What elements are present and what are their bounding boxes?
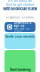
button[interactable]: Download & sign up — [4, 22, 35, 32]
staticText: Takes under two minutes — [13, 28, 29, 33]
staticText: Start banking — [9, 67, 30, 71]
staticText: that to get started — [6, 3, 34, 6]
staticText: with Molecule Bank — [3, 6, 37, 11]
staticText: Download & sign up — [13, 21, 31, 27]
button[interactable]: Verify your identity — [4, 33, 35, 49]
staticText: Verify your identity — [5, 35, 35, 38]
button[interactable]: Start banking — [4, 50, 35, 72]
staticText: No paperwork. No branches. — [5, 16, 34, 19]
staticText: It's as easy as — [8, 0, 32, 3]
